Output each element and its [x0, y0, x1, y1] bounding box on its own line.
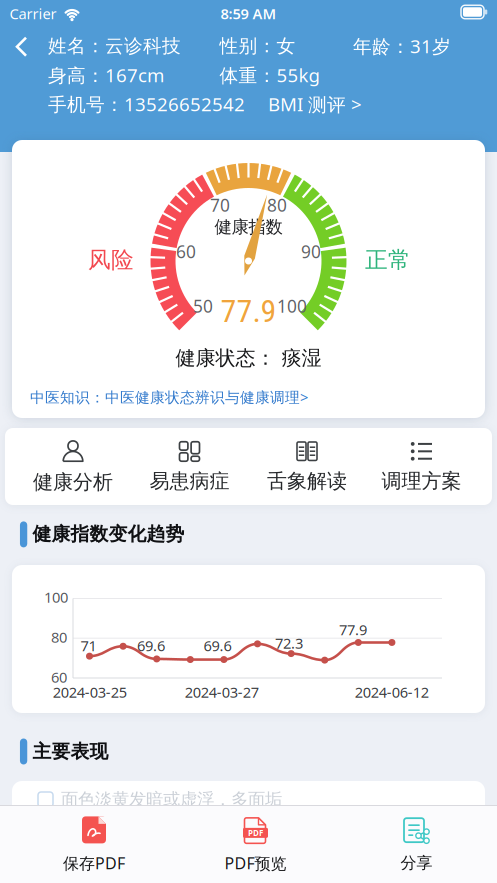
button[interactable]: Back	[3, 29, 39, 65]
staticText: 健康指数变化趋势	[32, 522, 184, 545]
staticText: 保存PDF	[63, 852, 125, 874]
staticText: 面色淡黄发暗或虚浮，多面垢	[61, 789, 282, 810]
staticText: Carrier	[9, 4, 56, 23]
staticText: 性别：女	[219, 34, 295, 57]
staticText: 71	[80, 636, 96, 655]
staticText: 易患病症	[149, 469, 229, 493]
staticText: 2024-06-12	[355, 682, 429, 702]
staticText: 100	[44, 587, 68, 607]
button[interactable]: 中医知识：中医健康状态辨识与健康调理>	[30, 387, 430, 407]
button[interactable]: 调理方案	[365, 434, 477, 500]
staticText: 77.9	[339, 620, 367, 639]
staticText: 正常	[365, 246, 411, 274]
staticText: 50	[193, 294, 213, 317]
staticText: 中医知识：中医健康状态辨识与健康调理>	[30, 387, 308, 407]
staticText: 2024-03-25	[53, 682, 127, 702]
staticText: 80	[51, 627, 67, 647]
staticText: 调理方案	[381, 469, 461, 493]
button[interactable]: BMI 测评 >	[268, 92, 398, 116]
staticText: 健康指数	[214, 216, 282, 238]
staticText: BMI 测评 >	[268, 92, 362, 116]
staticText: 体重：55kg	[219, 63, 319, 87]
button[interactable]: PDF	[185, 813, 325, 877]
staticText: 手机号：13526652542	[48, 92, 245, 116]
staticText: 60	[176, 240, 196, 263]
staticText: 60	[51, 667, 67, 687]
staticText: 8:59 AM	[220, 4, 276, 23]
staticText: 77.9	[220, 292, 276, 330]
button[interactable]: 分享	[346, 813, 486, 877]
staticText: 年龄：31岁	[353, 34, 451, 58]
button[interactable]: 健康分析	[17, 434, 129, 500]
staticText: 健康分析	[33, 470, 113, 494]
staticText: 2024-03-27	[185, 682, 259, 702]
button[interactable]: 舌象解读	[251, 434, 363, 500]
staticText: 69.6	[137, 636, 165, 655]
staticText: 72.3	[275, 633, 303, 653]
button[interactable]: 面色淡黄发暗或虚浮，多面垢	[38, 787, 478, 811]
staticText: 100	[277, 294, 307, 317]
staticText: 舌象解读	[267, 469, 347, 493]
staticText: 健康状态： 痰湿	[175, 346, 321, 370]
staticText: 主要表现	[32, 740, 108, 763]
staticText: 70	[210, 193, 230, 216]
staticText: 风险	[88, 246, 134, 274]
staticText: PDF	[248, 827, 263, 838]
button[interactable]: 保存PDF	[24, 813, 164, 877]
staticText: 姓名：云诊科技	[48, 34, 181, 57]
staticText: 90	[301, 240, 321, 263]
staticText: PDF预览	[224, 852, 286, 874]
staticText: 80	[267, 193, 287, 216]
staticText: 身高：167cm	[48, 63, 164, 87]
staticText: 69.6	[203, 636, 231, 655]
staticText: 分享	[400, 853, 432, 873]
button[interactable]: 易患病症	[133, 434, 245, 500]
